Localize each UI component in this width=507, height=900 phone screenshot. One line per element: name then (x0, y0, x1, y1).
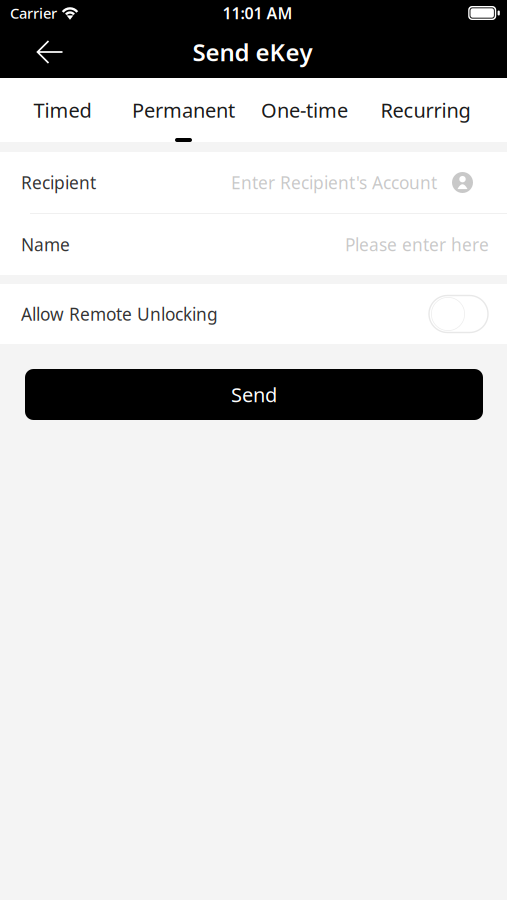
staticText: Permanent (132, 97, 235, 123)
staticText: Carrier (10, 3, 57, 23)
staticText: Recipient (21, 171, 96, 194)
button[interactable]: Back (0, 29, 75, 75)
staticText: Allow Remote Unlocking (21, 302, 218, 325)
staticText: One-time (261, 97, 348, 123)
staticText: Please enter here (345, 233, 489, 256)
staticText: Timed (33, 97, 91, 123)
staticText: 11:01 AM (222, 2, 292, 24)
staticText: Send eKey (192, 36, 312, 68)
button[interactable]: Send (25, 369, 483, 420)
staticText: Name (21, 233, 70, 256)
button[interactable]: One-time (244, 78, 365, 142)
staticText: Enter Recipient's Account (231, 171, 437, 194)
staticText: Send (231, 381, 277, 408)
button[interactable]: Name (0, 214, 507, 275)
button[interactable]: Allow Remote Unlocking (429, 295, 488, 332)
staticText: Recurring (380, 97, 470, 123)
button[interactable]: Recipient (0, 152, 507, 213)
button[interactable]: Permanent (123, 78, 244, 142)
button[interactable]: Timed (2, 78, 123, 142)
button[interactable]: Recurring (365, 78, 486, 142)
